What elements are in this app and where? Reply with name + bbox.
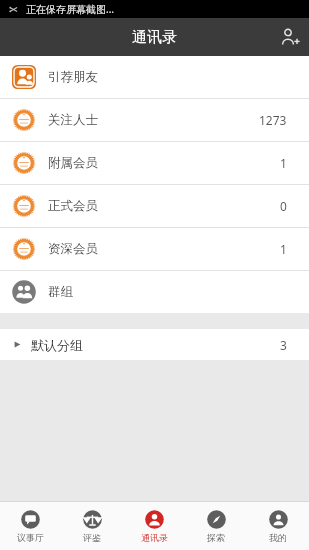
button[interactable]: 群组	[0, 271, 309, 313]
button[interactable]: 正式会员	[0, 185, 309, 227]
button[interactable]: 我的	[247, 502, 309, 550]
staticText: 1	[280, 241, 287, 257]
button[interactable]: 附属会员	[0, 142, 309, 184]
button[interactable]: 资深会员	[0, 228, 309, 270]
button[interactable]: 探索	[185, 502, 247, 550]
staticText: 议事厅	[17, 532, 44, 543]
staticText: 1273	[259, 112, 287, 128]
button[interactable]: 议事厅	[0, 502, 61, 550]
staticText: 0	[280, 198, 287, 214]
staticText: 资深会员	[48, 241, 98, 257]
button[interactable]: 默认分组	[0, 329, 309, 360]
staticText: 引荐朋友	[48, 69, 98, 85]
button[interactable]: 通讯录	[123, 502, 185, 550]
button[interactable]: Add contact	[271, 18, 309, 56]
staticText: 群组	[48, 284, 73, 300]
button[interactable]: 关注人士	[0, 99, 309, 141]
staticText: 我的	[269, 532, 287, 543]
staticText: 正在保存屏幕截图...	[26, 2, 115, 16]
button[interactable]: 评鉴	[61, 502, 123, 550]
staticText: 附属会员	[48, 155, 98, 171]
staticText: 关注人士	[48, 112, 98, 128]
staticText: 3	[280, 337, 287, 353]
staticText: 默认分组	[31, 337, 83, 353]
staticText: 正式会员	[48, 198, 98, 214]
staticText: 探索	[207, 532, 225, 543]
staticText: 1	[280, 155, 287, 171]
staticText: 评鉴	[83, 532, 101, 543]
staticText: 通讯录	[132, 28, 177, 47]
button[interactable]: 引荐朋友	[0, 56, 309, 98]
staticText: 通讯录	[141, 532, 168, 543]
